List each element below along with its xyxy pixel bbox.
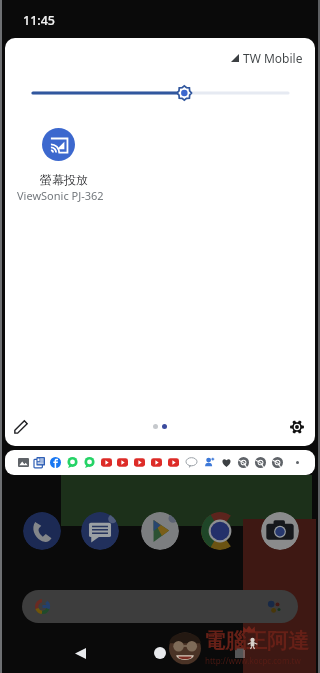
staticText: 電腦王阿達 [204, 628, 309, 654]
staticText: ViewSonic PJ-362 [17, 188, 104, 203]
button[interactable]: App [141, 512, 179, 550]
button[interactable]: App [23, 512, 61, 550]
staticText: 螢幕投放 [17, 172, 111, 187]
staticText: 11:45 [23, 12, 56, 29]
button[interactable]: Notifications [5, 450, 315, 475]
staticText: TW Mobile [243, 50, 303, 66]
button[interactable]: App [201, 512, 239, 550]
button[interactable]: Back [68, 641, 92, 665]
button[interactable]: Search [22, 590, 298, 623]
button[interactable]: Recents [228, 641, 252, 665]
button[interactable]: Edit tiles [6, 412, 36, 442]
button[interactable]: App [81, 512, 119, 550]
staticText: http://www.kocpc.com.tw [205, 655, 301, 666]
button[interactable]: Settings [282, 412, 312, 442]
button[interactable]: Screen cast [42, 128, 75, 161]
button[interactable]: Brightness [32, 84, 288, 102]
button[interactable]: Home [148, 641, 172, 665]
button[interactable]: App [261, 512, 299, 550]
